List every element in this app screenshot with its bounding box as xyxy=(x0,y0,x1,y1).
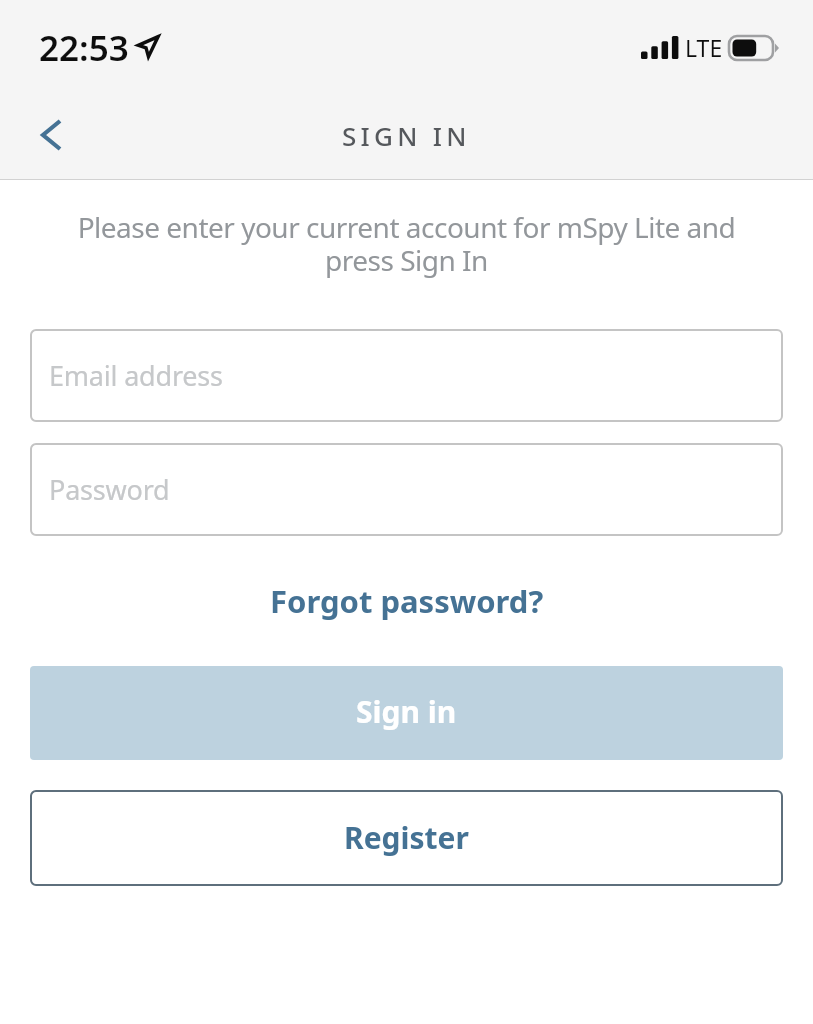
button[interactable]: Forgot password? xyxy=(252,571,562,631)
staticText: Password xyxy=(49,471,170,508)
button[interactable]: Sign in xyxy=(30,666,783,760)
staticText: SIGN IN xyxy=(342,118,471,153)
staticText: Please enter your current account for mS… xyxy=(57,208,756,279)
staticText: Register xyxy=(344,817,469,858)
button[interactable]: Back xyxy=(0,95,96,179)
button[interactable]: Password xyxy=(30,443,783,536)
button[interactable]: Register xyxy=(30,790,783,886)
staticText: Email address xyxy=(49,357,223,394)
staticText: Forgot password? xyxy=(270,580,544,622)
button[interactable]: Email address xyxy=(30,329,783,422)
staticText: LTE xyxy=(685,32,723,63)
staticText: Sign in xyxy=(356,691,457,732)
staticText: 22:53 xyxy=(39,24,129,72)
